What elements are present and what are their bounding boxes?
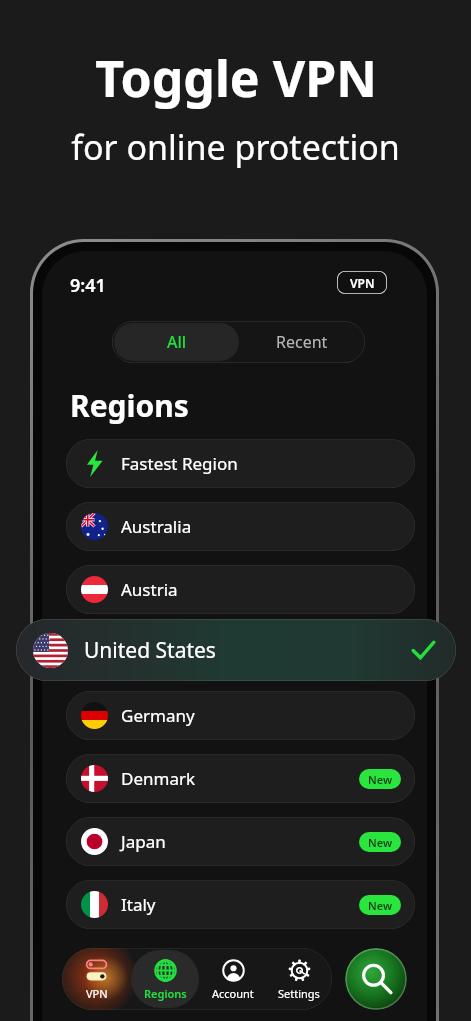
staticText: Australia xyxy=(121,515,192,538)
staticText: Toggle VPN xyxy=(95,44,377,112)
button[interactable]: Australia xyxy=(66,502,415,551)
staticText: All xyxy=(167,331,187,353)
staticText: Germany xyxy=(121,704,195,727)
staticText: Regions xyxy=(144,986,187,1001)
button[interactable]: Austria xyxy=(66,565,415,614)
staticText: New xyxy=(368,898,393,913)
staticText: VPN xyxy=(86,986,108,1001)
staticText: VPN xyxy=(350,275,375,291)
staticText: United States xyxy=(84,636,216,665)
staticText: 9:41 xyxy=(70,273,106,298)
button[interactable]: Germany xyxy=(66,691,415,740)
button[interactable]: Regions xyxy=(131,950,199,1008)
staticText: Japan xyxy=(121,830,166,853)
staticText: Regions xyxy=(70,385,189,426)
staticText: Settings xyxy=(278,986,320,1001)
button[interactable]: Japan xyxy=(66,817,415,866)
button[interactable]: United States xyxy=(16,619,456,681)
staticText: New xyxy=(368,772,393,787)
staticText: Recent xyxy=(276,331,328,353)
button[interactable]: Recent xyxy=(239,323,365,361)
staticText: Austria xyxy=(121,578,178,601)
staticText: Italy xyxy=(121,893,156,916)
button[interactable]: Settings xyxy=(265,950,332,1008)
button[interactable]: Search xyxy=(345,948,407,1010)
staticText: Fastest Region xyxy=(121,452,238,475)
staticText: for online protection xyxy=(71,124,400,170)
button[interactable]: VPN xyxy=(62,950,130,1008)
button[interactable]: Denmark xyxy=(66,754,415,803)
button[interactable]: All xyxy=(114,323,239,361)
button[interactable]: Fastest Region xyxy=(66,439,415,488)
button[interactable]: Italy xyxy=(66,880,415,929)
staticText: Denmark xyxy=(121,767,196,790)
staticText: Account xyxy=(212,986,254,1001)
button[interactable]: Account xyxy=(199,950,267,1008)
staticText: New xyxy=(368,835,393,850)
